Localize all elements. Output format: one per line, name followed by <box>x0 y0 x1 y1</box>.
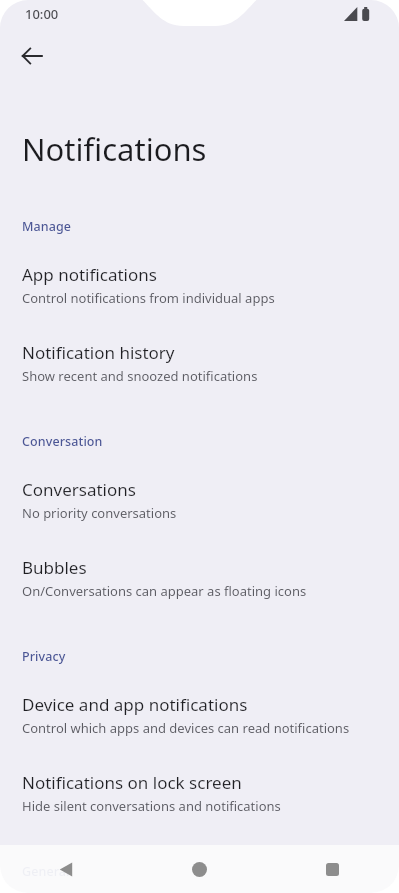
button[interactable]: Bubbles <box>0 522 399 600</box>
button[interactable]: Notification history <box>0 307 399 385</box>
staticText: Manage <box>22 218 72 235</box>
button[interactable]: Recent apps <box>266 845 399 893</box>
staticText: Privacy <box>22 648 66 665</box>
button[interactable]: Back <box>8 32 56 80</box>
button[interactable]: App notifications <box>0 235 399 307</box>
button[interactable]: Notifications on lock screen <box>0 737 399 815</box>
staticText: Hide silent conversations and notificati… <box>22 797 281 815</box>
button[interactable]: Device and app notifications <box>0 665 399 737</box>
staticText: Conversations <box>22 478 136 501</box>
staticText: 10:00 <box>25 5 59 23</box>
staticText: Notifications on lock screen <box>22 771 242 794</box>
button[interactable]: Conversations <box>0 450 399 522</box>
button[interactable]: Back <box>0 845 133 893</box>
staticText: Notification history <box>22 341 175 364</box>
button[interactable]: Home <box>133 845 266 893</box>
staticText: Device and app notifications <box>22 693 248 716</box>
staticText: Bubbles <box>22 556 87 579</box>
staticText: Notifications <box>22 128 207 170</box>
staticText: Control which apps and devices can read … <box>22 719 350 737</box>
staticText: On/Conversations can appear as floating … <box>22 582 307 600</box>
staticText: General <box>22 863 70 880</box>
staticText: Show recent and snoozed notifications <box>22 367 258 385</box>
staticText: Conversation <box>22 433 103 450</box>
staticText: Control notifications from individual ap… <box>22 289 275 307</box>
staticText: No priority conversations <box>22 504 177 522</box>
staticText: App notifications <box>22 263 157 286</box>
